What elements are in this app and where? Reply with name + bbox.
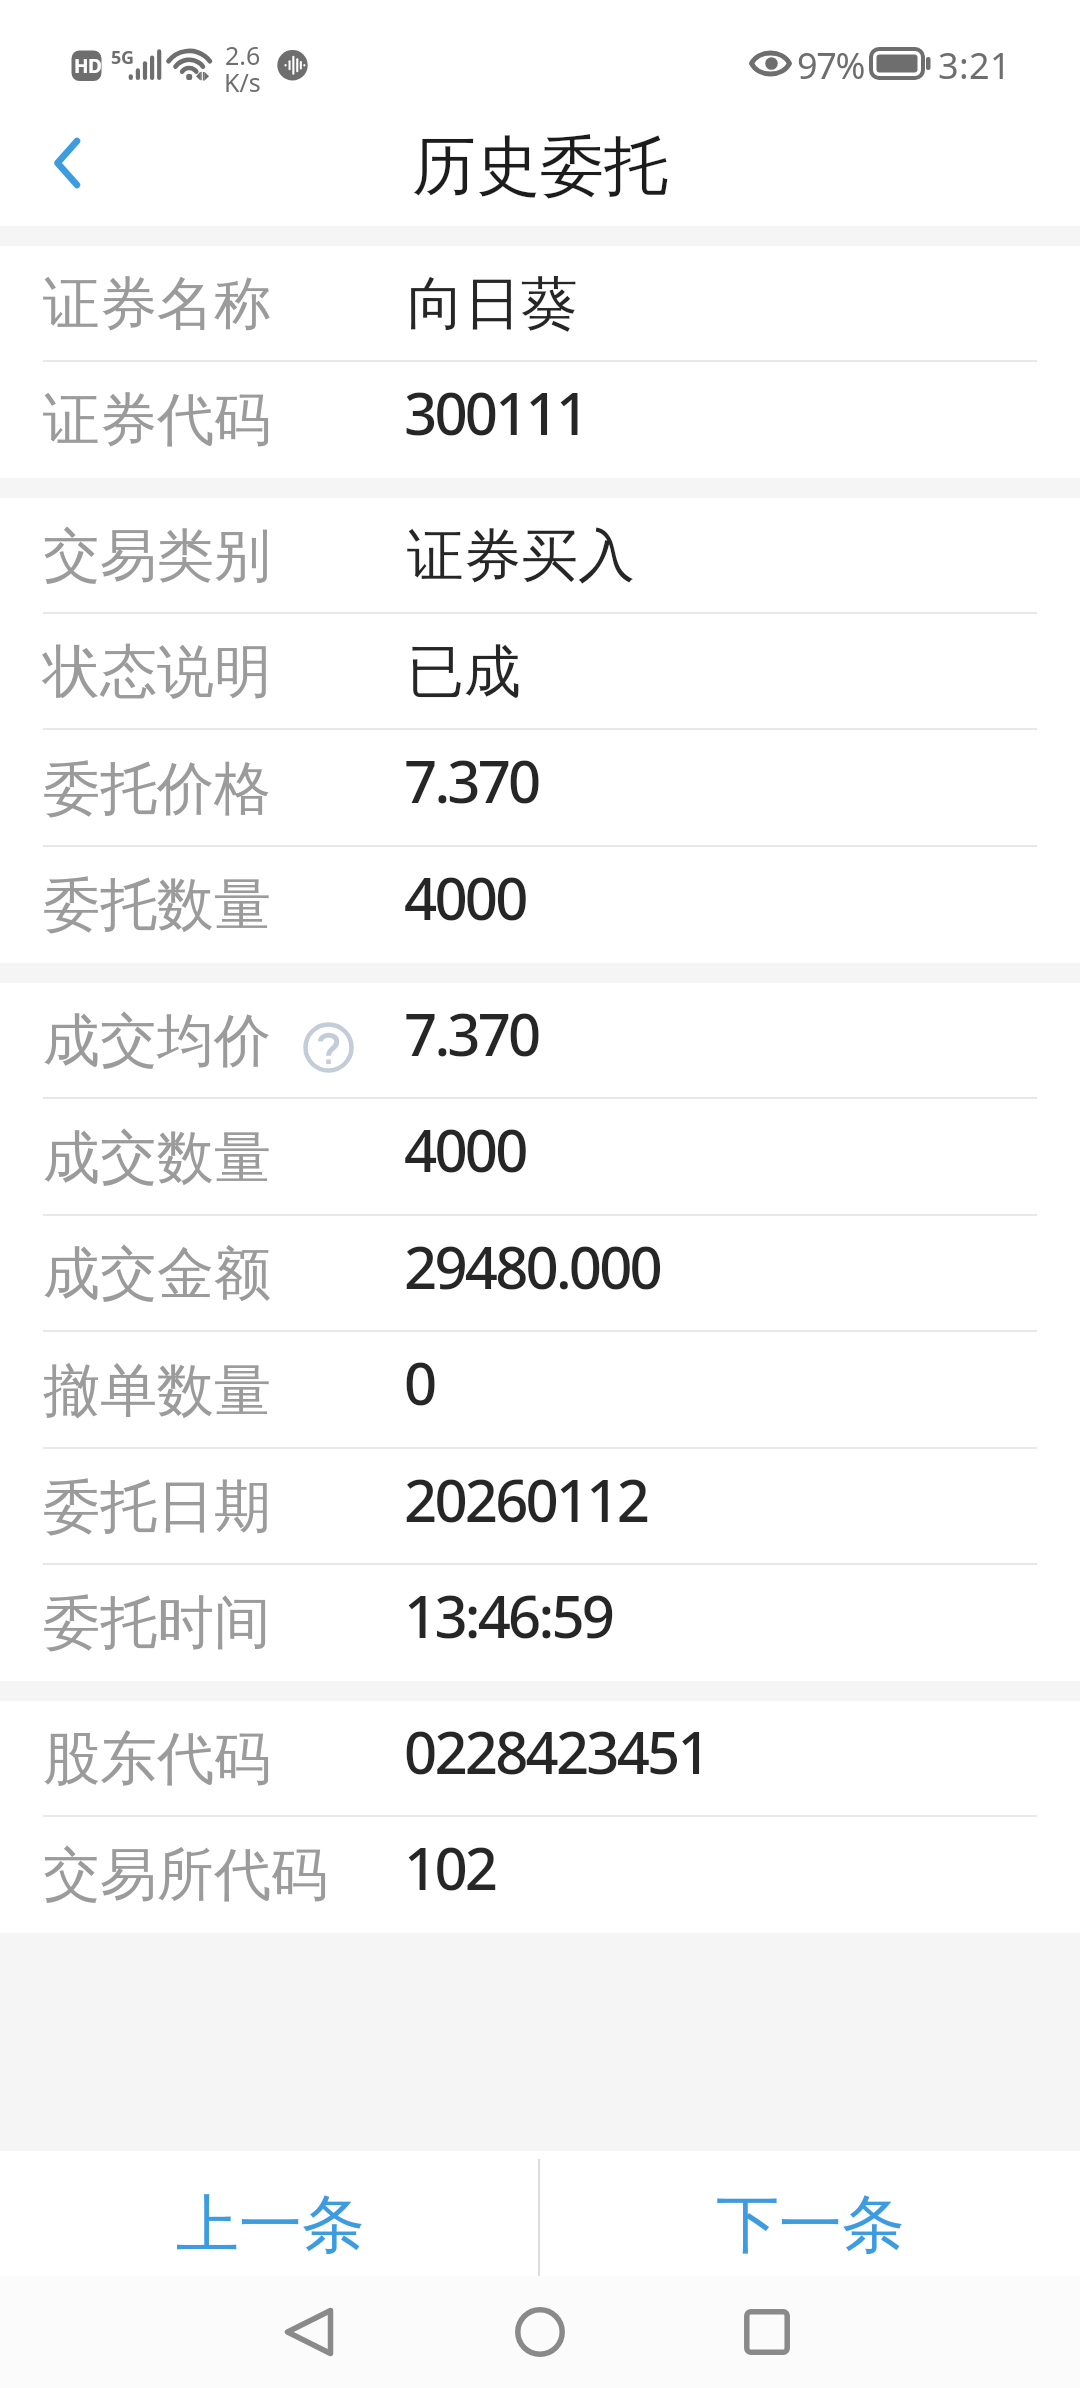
staticText: 5G — [111, 45, 134, 70]
staticText: 300111 — [404, 373, 587, 452]
button[interactable]: 委托日期 — [0, 1449, 1080, 1565]
staticText: 0228423451 — [404, 1712, 708, 1791]
staticText: 委托价格 — [43, 753, 271, 825]
staticText: 委托数量 — [43, 869, 271, 941]
staticText: 证券买入 — [407, 520, 635, 592]
staticText: 102 — [404, 1828, 496, 1907]
button[interactable]: Back — [253, 2276, 365, 2388]
button[interactable]: 成交数量 — [0, 1099, 1080, 1216]
button[interactable]: 下一条 — [540, 2151, 1080, 2276]
button[interactable]: 证券名称 — [0, 246, 1080, 362]
button[interactable]: 证券代码 — [0, 362, 1080, 478]
button[interactable]: 成交均价 — [0, 983, 1080, 1099]
staticText: 委托日期 — [43, 1471, 271, 1543]
staticText: 状态说明 — [43, 636, 271, 708]
staticText: 2.6 — [225, 38, 261, 72]
staticText: 7.370 — [404, 994, 539, 1073]
staticText: 3:21 — [938, 41, 1012, 90]
staticText: 委托时间 — [43, 1587, 271, 1659]
staticText: 29480.000 — [404, 1227, 660, 1306]
staticText: 成交均价 — [43, 1005, 271, 1077]
staticText: 下一条 — [716, 2185, 905, 2264]
staticText: 13:46:59 — [404, 1576, 613, 1655]
staticText: 0 — [404, 1343, 435, 1422]
button[interactable]: 成交金额 — [0, 1216, 1080, 1332]
button[interactable]: 交易类别 — [0, 498, 1080, 614]
staticText: 97% — [797, 41, 864, 90]
staticText: 20260112 — [404, 1460, 648, 1539]
staticText: 交易所代码 — [43, 1839, 328, 1911]
staticText: 7.370 — [404, 741, 539, 820]
button[interactable]: 委托数量 — [0, 847, 1080, 963]
staticText: 已成 — [407, 636, 521, 708]
button[interactable]: 上一条 — [0, 2151, 540, 2276]
staticText: 4000 — [404, 1110, 526, 1189]
staticText: 上一条 — [176, 2185, 365, 2264]
staticText: HD — [74, 53, 102, 79]
staticText: K/s — [224, 65, 261, 99]
button[interactable]: 委托价格 — [0, 730, 1080, 847]
staticText: 4000 — [404, 858, 526, 937]
staticText: 股东代码 — [43, 1723, 271, 1795]
staticText: 向日葵 — [407, 268, 578, 340]
button[interactable]: Recents — [711, 2276, 823, 2388]
button[interactable]: 交易所代码 — [0, 1817, 1080, 1933]
staticText: 成交数量 — [43, 1122, 271, 1194]
staticText: 证券代码 — [43, 384, 271, 456]
button[interactable]: Back — [0, 116, 110, 226]
button[interactable]: 委托时间 — [0, 1565, 1080, 1681]
button[interactable]: Help about average price — [303, 1022, 354, 1073]
staticText: 成交金额 — [43, 1238, 271, 1310]
staticText: 撤单数量 — [43, 1355, 271, 1427]
staticText: 历史委托 — [412, 126, 668, 207]
button[interactable]: Home — [484, 2276, 596, 2388]
button[interactable]: 撤单数量 — [0, 1332, 1080, 1449]
button[interactable]: 状态说明 — [0, 614, 1080, 730]
staticText: 证券名称 — [43, 268, 271, 340]
button[interactable]: 股东代码 — [0, 1701, 1080, 1817]
staticText: 交易类别 — [43, 520, 271, 592]
